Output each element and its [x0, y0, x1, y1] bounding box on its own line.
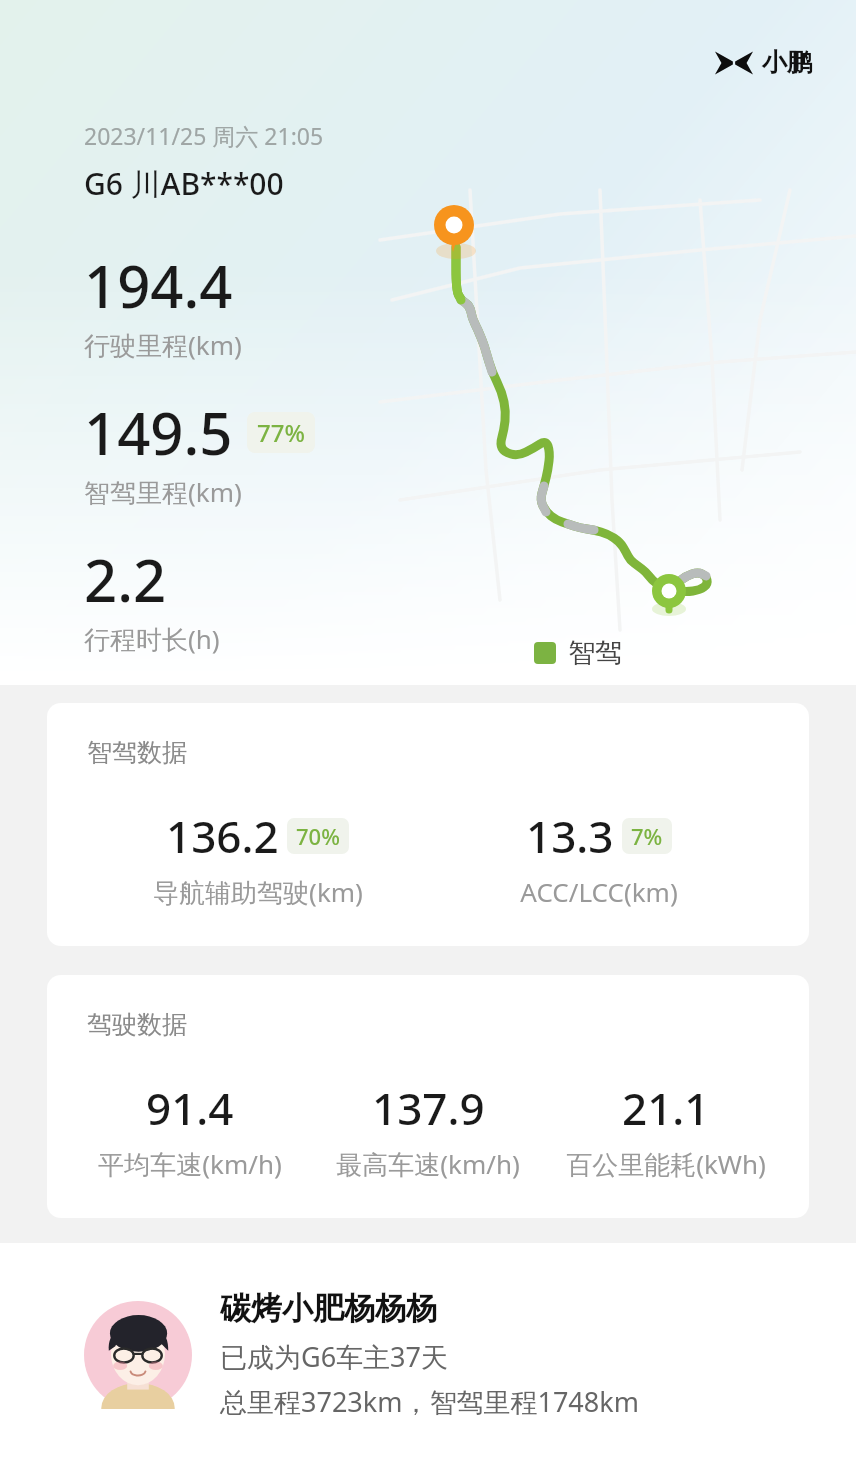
button[interactable]: 智驾数据: [47, 703, 809, 946]
staticText: G6 川AB***00: [84, 163, 284, 204]
staticText: 194.4: [84, 246, 233, 325]
staticText: 碳烤小肥杨杨杨: [220, 1289, 437, 1328]
staticText: 最高车速(km/h): [336, 1146, 520, 1182]
staticText: 77%: [257, 416, 305, 449]
staticText: 平均车速(km/h): [98, 1146, 282, 1182]
staticText: 91.4: [146, 1078, 234, 1138]
staticText: 智驾里程(km): [84, 474, 242, 510]
staticText: 149.5: [84, 393, 233, 472]
staticText: 智驾: [568, 636, 622, 670]
staticText: 总里程3723km，智驾里程1748km: [220, 1383, 639, 1420]
staticText: 136.2: [166, 806, 279, 866]
staticText: 2023/11/25 周六 21:05: [84, 120, 324, 151]
button[interactable]: 驾驶数据: [47, 975, 809, 1218]
staticText: ACC/LCC(km): [520, 874, 678, 909]
staticText: 70%: [296, 821, 340, 851]
staticText: 21.1: [622, 1078, 710, 1138]
staticText: 行驶里程(km): [84, 327, 242, 363]
staticText: 百公里能耗(kWh): [566, 1146, 766, 1182]
staticText: 驾驶数据: [87, 1009, 187, 1040]
staticText: 2.2: [84, 540, 167, 619]
staticText: 7%: [631, 821, 663, 851]
staticText: 已成为G6车主37天: [220, 1338, 448, 1375]
staticText: 13.3: [526, 806, 614, 866]
staticText: 导航辅助驾驶(km): [153, 874, 363, 910]
staticText: 智驾数据: [87, 737, 187, 768]
staticText: 行程时长(h): [84, 621, 220, 657]
staticText: 137.9: [372, 1078, 485, 1138]
button[interactable]: XPeng: [715, 47, 812, 78]
staticText: 小鹏: [762, 47, 812, 78]
button[interactable]: 碳烤小肥杨杨杨: [0, 1243, 856, 1466]
